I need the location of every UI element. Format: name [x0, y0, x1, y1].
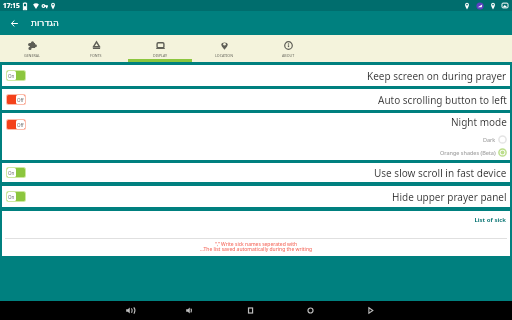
button[interactable]: Home [280, 301, 340, 320]
staticText: On [8, 73, 15, 79]
button[interactable]: GENERAL [0, 35, 64, 62]
button[interactable]: List of sick [2, 216, 506, 224]
button[interactable]: Back [0, 11, 29, 35]
button[interactable]: FONTS [64, 35, 128, 62]
staticText: Dark [483, 136, 496, 143]
staticText: “,” Write sick names seperated with [2, 241, 510, 248]
staticText: Off [17, 122, 24, 128]
button[interactable]: On [2, 65, 510, 86]
staticText: DISPLAY [153, 53, 168, 58]
staticText: Hide upper prayer panel [392, 190, 507, 204]
button[interactable]: Orange shades (Beta) [440, 148, 507, 157]
staticText: On [8, 194, 15, 200]
staticText: 17:15 [3, 1, 20, 10]
button[interactable]: On [2, 163, 510, 182]
button[interactable]: Volume down [160, 301, 220, 320]
staticText: Off [17, 97, 24, 103]
staticText: LOCATION [215, 53, 233, 58]
staticText: ABOUT [282, 53, 295, 58]
button[interactable]: Off [2, 113, 510, 160]
button[interactable]: Recents [220, 301, 280, 320]
button[interactable]: LOCATION [192, 35, 256, 62]
button[interactable]: Volume up [100, 301, 160, 320]
staticText: On [8, 170, 15, 176]
staticText: Keep screen on during prayer [367, 69, 507, 83]
staticText: Auto scrolling button to left [378, 93, 507, 107]
staticText: Night mode [451, 115, 507, 129]
button[interactable]: DISPLAY [128, 35, 192, 62]
button[interactable]: On [2, 186, 510, 207]
staticText: GENERAL [24, 53, 40, 58]
staticText: FONTS [90, 53, 102, 58]
button[interactable]: ABOUT [256, 35, 320, 62]
button[interactable]: Back [340, 301, 400, 320]
staticText: הגדרות [31, 18, 59, 28]
staticText: ...The list saved automatically during t… [2, 246, 510, 253]
staticText: Use slow scroll in fast device [374, 166, 507, 180]
button[interactable]: Dark [483, 135, 507, 144]
button[interactable]: Off [2, 89, 510, 110]
staticText: Orange shades (Beta) [440, 149, 496, 156]
